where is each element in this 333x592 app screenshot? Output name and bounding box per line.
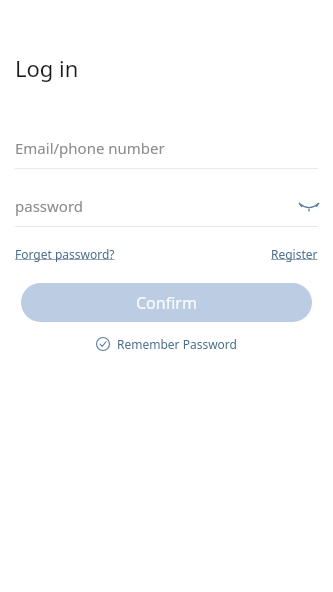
staticText: password	[15, 196, 83, 216]
staticText: Remember Password	[117, 336, 237, 352]
button[interactable]: Remember Password	[96, 334, 237, 354]
staticText: Email/phone number	[15, 138, 165, 158]
button[interactable]: Show password	[296, 193, 322, 219]
staticText: Log in	[15, 53, 79, 83]
button[interactable]: Email/phone number	[0, 134, 333, 162]
button[interactable]: Forget password?	[15, 246, 115, 262]
staticText: Forget password?	[15, 246, 115, 262]
button[interactable]: Confirm	[21, 283, 312, 322]
staticText: Register	[271, 246, 318, 262]
staticText: Confirm	[136, 292, 197, 314]
button[interactable]: password	[0, 192, 296, 220]
button[interactable]: Register	[271, 246, 318, 262]
